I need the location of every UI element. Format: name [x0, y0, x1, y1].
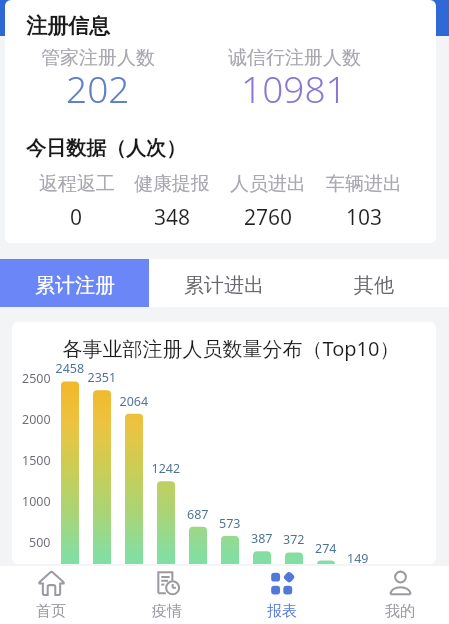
button[interactable]: 返程返工 [29, 172, 124, 232]
button[interactable]: Reports [237, 566, 327, 624]
staticText: 车辆进出 [326, 172, 402, 196]
button[interactable]: 管家注册人数 [18, 46, 178, 120]
button[interactable]: 诚信行注册人数 [214, 46, 374, 120]
button[interactable]: 其他 [299, 259, 449, 307]
staticText: 我的 [385, 602, 415, 621]
button[interactable]: Profile [355, 566, 445, 624]
staticText: 其他 [354, 273, 394, 298]
other: Reports [269, 570, 296, 597]
staticText: 注册信息 [26, 13, 110, 39]
button[interactable]: 健康提报 [124, 172, 220, 232]
staticText: 0 [70, 203, 83, 232]
staticText: 健康提报 [134, 172, 210, 196]
staticText: 10981 [241, 63, 347, 113]
staticText: 首页 [36, 602, 66, 621]
staticText: 各事业部注册人员数量分布（Top10） [19, 335, 436, 362]
button[interactable]: 车辆进出 [316, 172, 412, 232]
other: Home [38, 570, 65, 597]
staticText: 今日数据（人次） [26, 136, 186, 161]
other: Epidemic [154, 570, 181, 597]
staticText: 人员进出 [230, 172, 306, 196]
staticText: 累计注册 [35, 273, 115, 298]
button[interactable]: 人员进出 [220, 172, 316, 232]
staticText: 管家注册人数 [41, 46, 155, 70]
button[interactable]: Epidemic [122, 566, 212, 624]
staticText: 2760 [244, 203, 293, 232]
staticText: 返程返工 [39, 172, 115, 196]
button[interactable]: Home [6, 566, 96, 624]
staticText: 103 [346, 203, 383, 232]
button[interactable]: 累计进出 [149, 259, 299, 307]
other: Profile [387, 570, 414, 597]
staticText: 202 [66, 63, 130, 113]
staticText: 累计进出 [184, 273, 264, 298]
button[interactable]: 累计注册 [0, 259, 149, 307]
staticText: 报表 [267, 602, 297, 621]
staticText: 诚信行注册人数 [228, 46, 361, 70]
staticText: 348 [154, 203, 191, 232]
staticText: 疫情 [152, 602, 182, 621]
